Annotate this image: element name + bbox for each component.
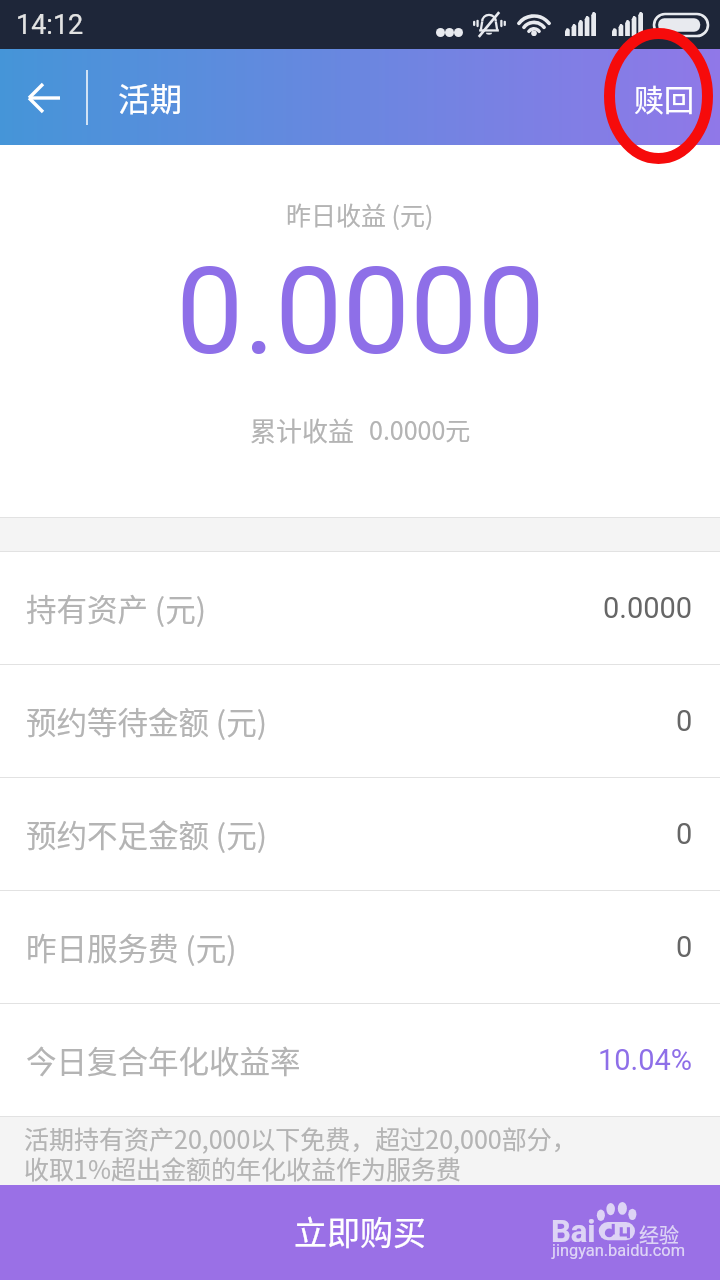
button[interactable]: 今日复合年化收益率 [0, 1004, 720, 1116]
staticText: 0.0000元 [369, 411, 471, 447]
staticText: jingyan.baidu.com [552, 1241, 702, 1260]
button[interactable]: Back [11, 65, 76, 130]
staticText: 立即购买 [294, 1207, 426, 1255]
staticText: 0.0000 [176, 242, 545, 383]
button[interactable]: 预约等待金额 (元) [0, 665, 720, 777]
staticText: 昨日收益 (元) [286, 196, 434, 232]
staticText: 预约等待金额 (元) [26, 699, 267, 743]
staticText: 0.0000 [603, 591, 693, 625]
staticText: 收取1%超出金额的年化收益作为服务费 [24, 1150, 461, 1186]
staticText: 赎回 [634, 76, 694, 119]
staticText: 10.04% [598, 1043, 693, 1077]
button[interactable]: 预约不足金额 (元) [0, 778, 720, 890]
button[interactable]: 持有资产 (元) [0, 552, 720, 664]
staticText: 累计收益 [250, 411, 355, 449]
staticText: 活期 [118, 74, 183, 120]
staticText: 昨日服务费 (元) [26, 925, 237, 969]
button[interactable]: 立即购买 [0, 1185, 720, 1280]
button[interactable]: 昨日服务费 (元) [0, 891, 720, 1003]
staticText: 0 [676, 930, 693, 964]
staticText: 经验 [639, 1220, 679, 1249]
staticText: 0 [676, 817, 693, 851]
staticText: Bai [551, 1213, 596, 1249]
staticText: 0 [676, 704, 693, 738]
staticText: 14:12 [16, 9, 84, 41]
staticText: 今日复合年化收益率 [26, 1038, 301, 1082]
staticText: 持有资产 (元) [26, 586, 206, 630]
staticText: 活期持有资产20,000以下免费，超过20,000部分， [24, 1120, 577, 1156]
staticText: 预约不足金额 (元) [26, 812, 267, 856]
button[interactable]: 赎回 [608, 49, 720, 145]
